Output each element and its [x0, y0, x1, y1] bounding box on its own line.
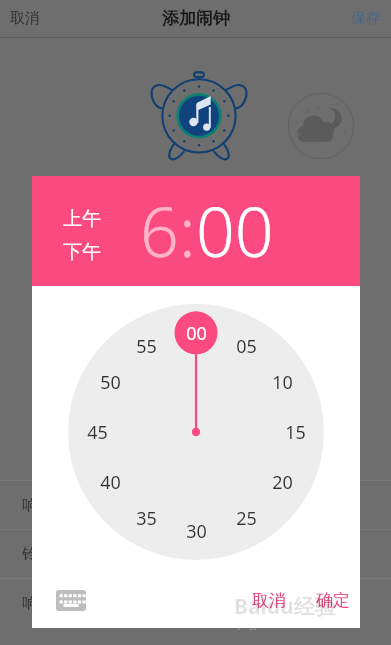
button[interactable]: 25 [228, 505, 264, 531]
button[interactable]: 保存 [341, 3, 391, 34]
button[interactable]: 00 [196, 184, 274, 277]
staticText: 25 [236, 506, 257, 531]
staticText: 50 [100, 370, 121, 395]
staticText: 响铃日 [22, 496, 67, 515]
button[interactable]: 35 [128, 505, 164, 531]
staticText: 05 [236, 334, 257, 359]
staticText: 上午 [63, 207, 101, 231]
staticText: 保存 [351, 9, 381, 28]
button[interactable]: 取消 [246, 584, 292, 617]
button[interactable]: 20 [264, 469, 300, 495]
button[interactable]: 下午 [62, 239, 102, 265]
button[interactable]: 响铃方式 [0, 579, 391, 627]
button[interactable]: 45 [79, 419, 115, 445]
staticText: jingyan.baidu.com [238, 618, 316, 630]
button[interactable]: 上午 [62, 206, 102, 232]
staticText: 40 [100, 470, 121, 495]
staticText: 35 [136, 506, 157, 531]
button[interactable]: 响铃日 [0, 481, 391, 529]
button[interactable]: 05 [228, 333, 264, 359]
staticText: 取消 [252, 590, 286, 611]
button[interactable]: 取消 [0, 3, 50, 34]
button[interactable]: 6 [140, 184, 179, 277]
staticText: 00 [186, 321, 207, 346]
staticText: 下午 [63, 240, 101, 264]
button[interactable]: Switch to keyboard input [56, 590, 86, 611]
button[interactable]: 50 [92, 369, 128, 395]
button[interactable]: 确定 [310, 584, 356, 617]
staticText: 6 [140, 184, 179, 277]
button[interactable]: Bedtime mode [287, 92, 355, 160]
staticText: 30 [186, 519, 207, 544]
staticText: 铃声 [22, 545, 52, 564]
staticText: 55 [136, 334, 157, 359]
button[interactable]: 铃声 [0, 530, 391, 578]
staticText: 20 [272, 470, 293, 495]
staticText: 15 [285, 420, 306, 445]
button[interactable]: 00 [178, 320, 214, 346]
staticText: Baidu经验 [234, 592, 336, 621]
button[interactable]: 40 [92, 469, 128, 495]
button[interactable]: 30 [178, 518, 214, 544]
staticText: : [179, 184, 196, 277]
button[interactable]: 10 [264, 369, 300, 395]
staticText: 确定 [316, 590, 350, 611]
button[interactable]: Alarm ringtone [152, 66, 246, 160]
staticText: 45 [87, 420, 108, 445]
staticText: 00 [196, 184, 274, 277]
staticText: 响铃方式 [22, 594, 82, 613]
staticText: 取消 [10, 9, 40, 28]
button[interactable]: 55 [128, 333, 164, 359]
staticText: 添加闹钟 [162, 8, 230, 29]
button[interactable]: 15 [277, 419, 313, 445]
staticText: 10 [272, 370, 293, 395]
